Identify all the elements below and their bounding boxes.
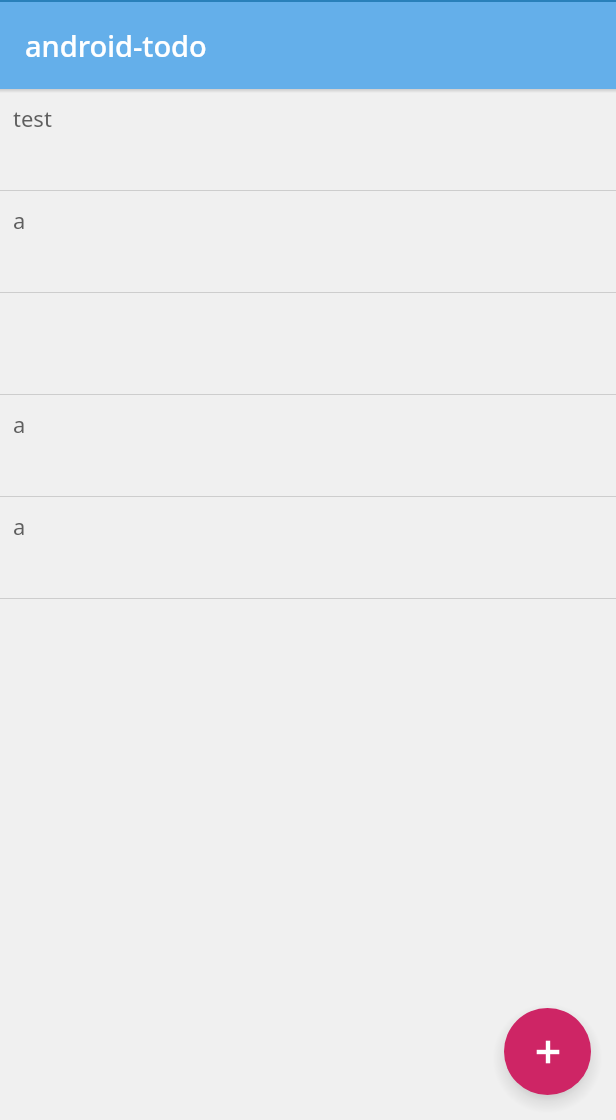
- button[interactable]: a: [0, 497, 616, 599]
- button[interactable]: test: [0, 89, 616, 191]
- button[interactable]: Add todo: [504, 1008, 591, 1095]
- staticText: a: [13, 409, 26, 439]
- button[interactable]: a: [0, 395, 616, 497]
- button[interactable]: a: [0, 191, 616, 293]
- staticText: a: [13, 205, 26, 235]
- staticText: android-todo: [25, 26, 207, 65]
- staticText: a: [13, 511, 26, 541]
- button[interactable]: [0, 293, 616, 395]
- staticText: test: [13, 103, 52, 133]
